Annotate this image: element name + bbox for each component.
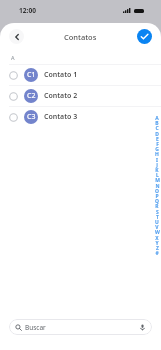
- staticText: V: [155, 224, 159, 231]
- staticText: R: [155, 203, 159, 210]
- staticText: Contatos: [64, 32, 97, 42]
- staticText: A: [155, 115, 159, 122]
- button[interactable]: Buscar: [9, 319, 152, 335]
- staticText: P: [155, 193, 159, 200]
- staticText: F: [156, 141, 159, 148]
- staticText: #: [155, 250, 159, 257]
- button[interactable]: Back: [9, 29, 24, 44]
- staticText: O: [155, 188, 159, 195]
- staticText: U: [155, 219, 159, 226]
- staticText: C3: [27, 112, 36, 122]
- staticText: Contato 1: [44, 70, 78, 80]
- staticText: Q: [155, 198, 159, 205]
- staticText: Contato 2: [44, 91, 78, 101]
- staticText: S: [156, 209, 159, 216]
- staticText: M: [155, 177, 160, 184]
- staticText: N: [155, 183, 160, 190]
- staticText: I: [156, 157, 158, 164]
- staticText: K: [155, 167, 159, 174]
- staticText: Buscar: [25, 323, 46, 332]
- staticText: T: [156, 214, 159, 221]
- staticText: Y: [155, 240, 159, 247]
- staticText: D: [155, 131, 159, 138]
- button[interactable]: Confirm selection: [137, 29, 152, 44]
- staticText: E: [156, 136, 159, 143]
- button[interactable]: Alphabet index: [154, 115, 160, 263]
- staticText: Contato 3: [44, 112, 78, 122]
- staticText: C1: [27, 70, 36, 80]
- staticText: C2: [27, 91, 36, 101]
- staticText: C: [155, 125, 159, 132]
- staticText: Z: [156, 245, 159, 252]
- staticText: A: [11, 54, 15, 61]
- button[interactable]: C1: [0, 65, 161, 85]
- staticText: G: [155, 146, 159, 153]
- staticText: H: [155, 151, 159, 158]
- button[interactable]: C2: [0, 86, 161, 106]
- button[interactable]: C3: [0, 107, 161, 127]
- staticText: X: [155, 235, 159, 242]
- staticText: W: [155, 229, 160, 236]
- staticText: 12:00: [19, 6, 36, 15]
- staticText: J: [156, 162, 158, 169]
- staticText: L: [156, 172, 159, 179]
- staticText: B: [155, 120, 159, 127]
